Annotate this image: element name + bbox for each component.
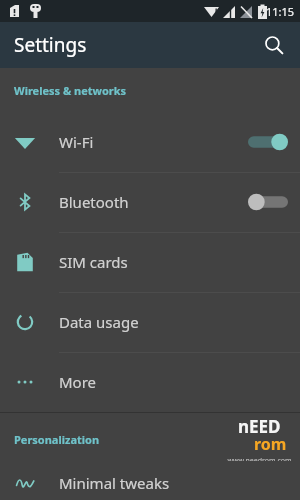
staticText: 11:15 — [266, 4, 295, 19]
button[interactable]: Wi-Fi — [0, 112, 300, 172]
staticText: Data usage — [59, 312, 139, 332]
button[interactable]: Search — [256, 27, 292, 63]
staticText: www.needrom.com — [227, 456, 292, 461]
staticText: SIM cards — [59, 252, 128, 272]
button[interactable]: Data usage — [0, 292, 300, 352]
staticText: Wi-Fi — [59, 132, 94, 152]
button[interactable]: Minimal tweaks — [0, 465, 300, 500]
staticText: Personalization — [14, 432, 100, 447]
staticText: rom — [254, 433, 287, 455]
staticText: nEED — [238, 415, 281, 438]
button[interactable]: Bluetooth — [0, 172, 300, 232]
staticText: More — [59, 372, 97, 392]
staticText: Settings — [14, 32, 87, 58]
staticText: Bluetooth — [59, 192, 129, 212]
staticText: Wireless & networks — [14, 83, 127, 98]
staticText: Minimal tweaks — [59, 473, 170, 493]
button[interactable]: SIM cards — [0, 232, 300, 292]
button[interactable]: More — [0, 352, 300, 412]
